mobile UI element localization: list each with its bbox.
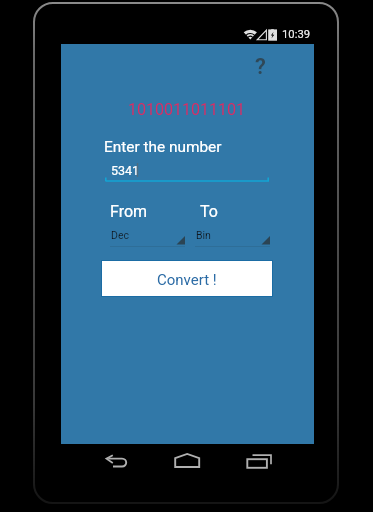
staticText: Dec xyxy=(111,229,129,241)
button[interactable]: Back xyxy=(104,455,130,469)
staticText: Enter the number xyxy=(104,138,222,156)
button[interactable]: Home xyxy=(174,453,201,468)
button[interactable]: Bin xyxy=(195,228,270,246)
staticText: 1010011011101 xyxy=(128,100,245,119)
staticText: Bin xyxy=(196,229,211,241)
button[interactable]: Dec xyxy=(110,228,185,246)
staticText: 5341 xyxy=(111,163,140,178)
button[interactable]: 5341 xyxy=(105,160,269,182)
button[interactable]: Help xyxy=(246,53,274,81)
staticText: ? xyxy=(255,54,266,80)
staticText: From xyxy=(110,202,148,221)
button[interactable]: Convert ! xyxy=(102,261,272,296)
staticText: Convert ! xyxy=(157,271,217,289)
staticText: To xyxy=(200,202,218,221)
staticText: 10:39 xyxy=(282,28,311,41)
button[interactable]: Recent apps xyxy=(244,453,274,468)
